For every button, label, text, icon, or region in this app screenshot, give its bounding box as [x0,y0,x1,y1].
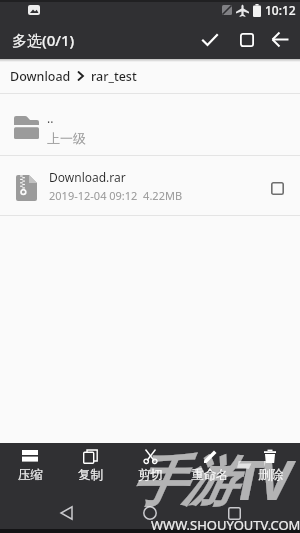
button[interactable]: 剪切 [120,443,180,497]
staticText: Download.rar [49,169,126,185]
staticText: WWW.SHOUYOUTV.COM [151,516,300,533]
staticText: 多选(0/1) [12,30,75,50]
button[interactable] [192,20,228,59]
button[interactable]: Download [0,59,300,94]
staticText: 压缩 [18,467,43,483]
button[interactable]: .. [0,94,300,156]
staticText: 2019-12-04 09:12 4.22MB [49,188,183,203]
staticText: 删除 [258,467,283,483]
button[interactable] [262,20,298,59]
button[interactable] [206,497,262,529]
button[interactable] [122,497,178,529]
staticText: 复制 [78,467,103,483]
staticText: Download [10,68,71,85]
button[interactable] [229,20,265,59]
button[interactable]: 删除 [240,443,300,497]
button[interactable]: 复制 [60,443,120,497]
staticText: .. [47,110,54,126]
button[interactable] [38,497,94,529]
button[interactable]: Download.rar [0,156,300,216]
staticText: rar_test [91,68,137,85]
button[interactable]: 压缩 [0,443,60,497]
staticText: 手游TV [130,442,289,516]
staticText: 10:12 [265,2,296,18]
button[interactable] [257,168,297,208]
staticText: 剪切 [138,467,163,483]
button[interactable]: 重命名 [180,443,240,497]
staticText: 上一级 [47,130,86,146]
staticText: 重命名 [191,467,229,483]
